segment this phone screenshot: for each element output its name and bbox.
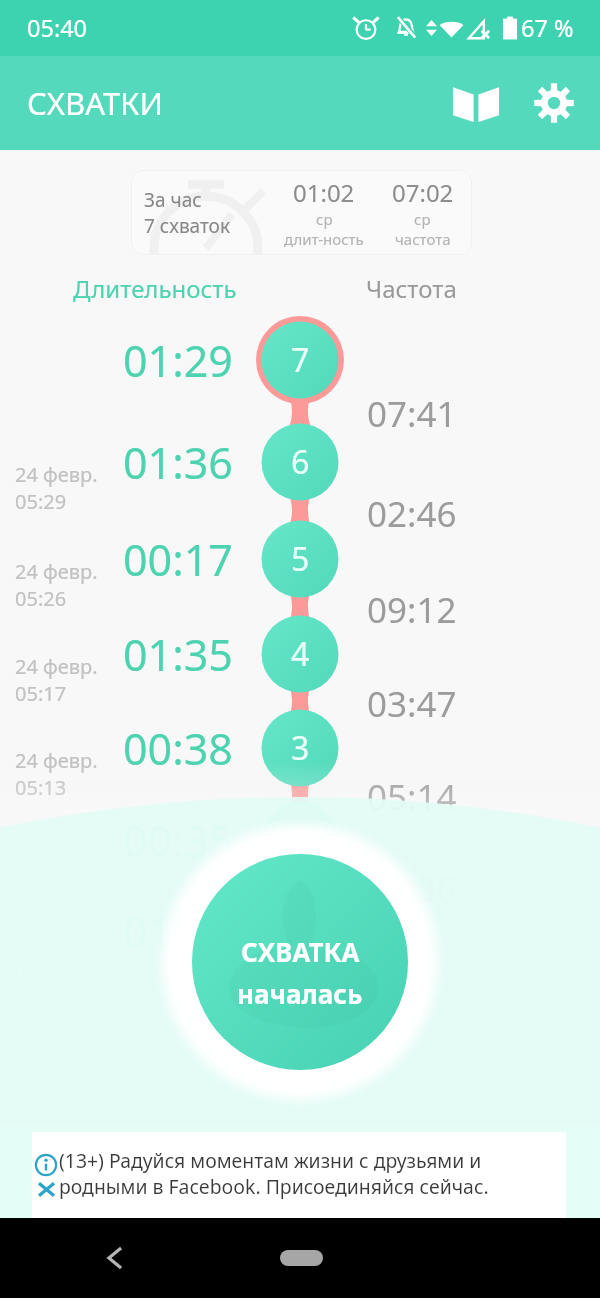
staticText: 01:02 bbox=[123, 902, 233, 961]
staticText: ср bbox=[316, 209, 333, 229]
staticText: 07:02 bbox=[392, 176, 454, 209]
staticText: 1 bbox=[291, 909, 310, 953]
button[interactable]: СХВАТКА bbox=[192, 854, 408, 1070]
staticText: 07:41 bbox=[367, 390, 457, 438]
button[interactable]: 6 bbox=[261, 423, 339, 501]
staticText: 7 bbox=[291, 338, 310, 382]
staticText: началась bbox=[237, 976, 363, 1011]
button[interactable]: (13+) Радуйся моментам жизни с друзьями … bbox=[32, 1132, 566, 1218]
staticText: ср bbox=[414, 209, 431, 229]
staticText: 05:17 bbox=[15, 680, 67, 707]
staticText: 24 февр. bbox=[15, 558, 98, 585]
button[interactable]: Главная bbox=[280, 1250, 323, 1266]
button[interactable]: 5 bbox=[261, 520, 339, 598]
staticText: 03:47 bbox=[367, 680, 457, 728]
staticText: 02:46 bbox=[367, 490, 457, 538]
staticText: 00:38 bbox=[123, 719, 233, 778]
other: Закрыть bbox=[34, 1177, 59, 1202]
staticText: 01:36 bbox=[123, 433, 233, 492]
staticText: 05:29 bbox=[15, 488, 67, 515]
staticText: 01:02 bbox=[293, 176, 355, 209]
staticText: 09:12 bbox=[367, 586, 457, 634]
staticText: 7 схваток bbox=[144, 213, 230, 239]
staticText: 06:36 bbox=[367, 865, 457, 913]
button[interactable]: 3 bbox=[261, 709, 339, 787]
button[interactable]: Назад bbox=[91, 1234, 139, 1282]
staticText: 2 bbox=[291, 818, 310, 862]
staticText: 01:29 bbox=[123, 331, 233, 390]
staticText: За час bbox=[144, 187, 202, 213]
button[interactable]: Настройки bbox=[522, 71, 586, 135]
staticText: 24 февр. bbox=[15, 461, 98, 488]
staticText: родными в Facebook. Присоединяйся сейчас… bbox=[59, 1173, 489, 1199]
staticText: 6 bbox=[291, 440, 310, 484]
staticText: 24 февр. bbox=[15, 747, 98, 774]
staticText: 00:35 bbox=[123, 811, 233, 870]
button[interactable]: За час bbox=[131, 170, 472, 255]
staticText: 00:17 bbox=[123, 530, 233, 589]
button[interactable]: 1 bbox=[261, 892, 339, 970]
staticText: СХВАТКА bbox=[241, 934, 360, 969]
staticText: Частота bbox=[366, 272, 457, 305]
button[interactable]: 7 bbox=[261, 321, 339, 399]
button[interactable]: Справка bbox=[444, 71, 508, 135]
button[interactable]: 4 bbox=[261, 615, 339, 693]
staticText: СХВАТКИ bbox=[27, 82, 163, 124]
staticText: 5 bbox=[291, 537, 310, 581]
staticText: (13+) Радуйся моментам жизни с друзьями … bbox=[59, 1147, 482, 1173]
staticText: 05:14 bbox=[367, 773, 457, 821]
staticText: частота bbox=[395, 229, 451, 249]
staticText: 24 февр. bbox=[15, 653, 98, 680]
staticText: 3 bbox=[291, 726, 310, 770]
staticText: длит-ность bbox=[284, 229, 364, 249]
staticText: 05:26 bbox=[15, 585, 67, 612]
staticText: 05:13 bbox=[15, 774, 67, 801]
staticText: Длительность bbox=[73, 272, 237, 305]
staticText: 4 bbox=[291, 632, 310, 676]
staticText: 67 % bbox=[521, 12, 574, 44]
other: Информация bbox=[35, 1154, 57, 1176]
staticText: 01:35 bbox=[123, 625, 233, 684]
button[interactable]: 2 bbox=[261, 801, 339, 879]
staticText: 05:40 bbox=[27, 12, 88, 44]
